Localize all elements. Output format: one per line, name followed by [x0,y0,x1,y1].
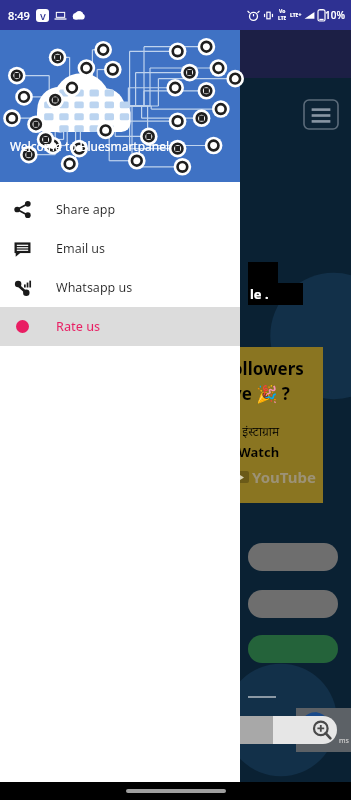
button[interactable]: Zoom out [209,716,273,744]
button[interactable]: Rate us [0,307,240,346]
staticText: में इंस्टाग्राम [232,423,280,439]
staticText: 10% [325,8,345,22]
staticText: Welcome to Bluesmartpanel [10,138,170,154]
button[interactable]: Open navigation menu [303,99,339,130]
staticText: V [40,10,46,22]
staticText: Vo [279,8,286,15]
button[interactable]: Email us [0,229,240,268]
button[interactable]: Whatsapp us [0,268,240,307]
staticText: ?Watch [232,443,280,461]
staticText: 8:49 [8,8,30,23]
button[interactable]: ollowers [228,347,323,503]
staticText: YouTube [252,467,316,487]
staticText: ye 🎉 ? [232,382,290,405]
button[interactable]: ms [296,708,351,752]
staticText: Whatsapp us [56,279,133,296]
staticText: Email us [56,240,106,257]
staticText: le . [250,285,269,303]
staticText: LTE+ [290,12,302,19]
staticText: ms [339,736,349,746]
staticText: Rate us [56,318,101,335]
button[interactable] [248,543,338,571]
staticText: ollowers [232,357,304,380]
button[interactable] [248,590,338,618]
button[interactable] [248,635,338,663]
staticText: LTE [278,15,287,22]
button[interactable]: Share app [0,190,240,229]
staticText: Share app [56,201,116,218]
button[interactable]: Zoom in [273,716,337,744]
